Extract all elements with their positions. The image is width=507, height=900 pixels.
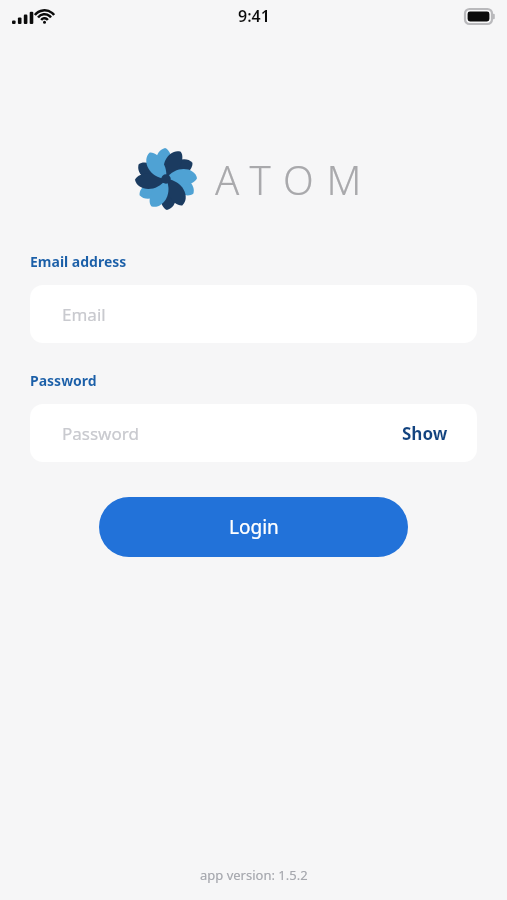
staticText: Login — [229, 514, 279, 540]
button[interactable]: Login — [99, 497, 408, 557]
other: Atom logo — [133, 146, 199, 212]
staticText: Email address — [30, 252, 127, 271]
staticText: Password — [30, 371, 97, 390]
button[interactable]: Show — [402, 422, 448, 445]
button[interactable]: Password — [30, 404, 477, 462]
staticText: 9:41 — [238, 5, 270, 27]
staticText: Password — [62, 422, 139, 445]
staticText: Email — [62, 303, 106, 326]
staticText: ATOM — [215, 152, 375, 206]
staticText: app version: 1.5.2 — [200, 866, 308, 884]
staticText: Show — [402, 422, 448, 445]
button[interactable]: Email — [30, 285, 477, 343]
